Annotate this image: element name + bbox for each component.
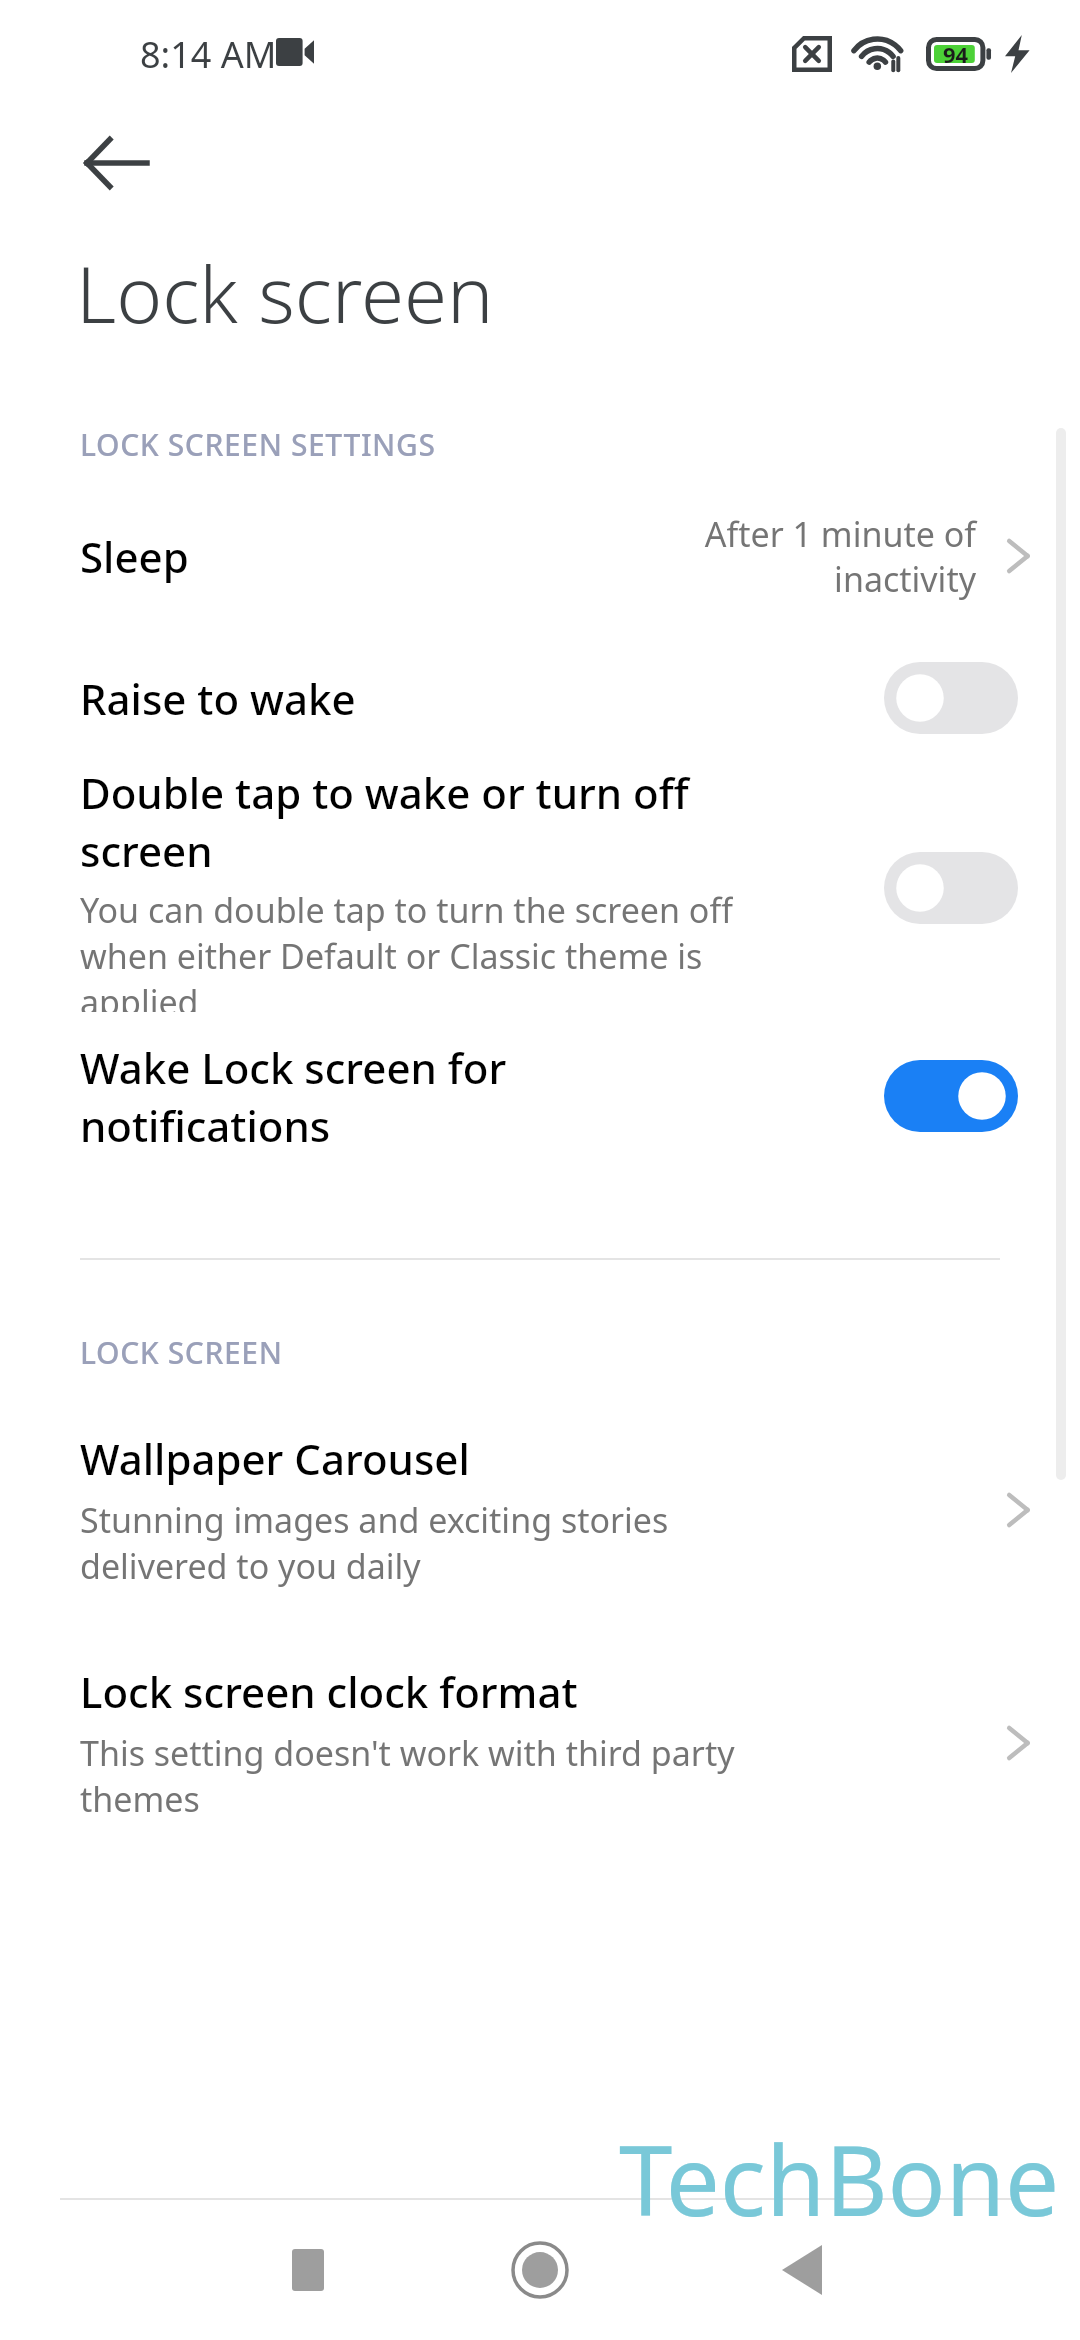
staticText: Stunning images and exciting stories del… <box>80 1497 669 1589</box>
staticText: 8:14 AM <box>140 30 277 79</box>
button[interactable]: Home <box>490 2220 590 2320</box>
button[interactable]: Toggle on <box>884 1060 1018 1132</box>
staticText: After 1 minute of inactivity <box>704 511 976 601</box>
staticText: This setting doesn't work with third par… <box>80 1730 735 1822</box>
button[interactable]: Back <box>756 2224 848 2316</box>
staticText: 94 <box>943 39 969 69</box>
button[interactable]: Wake Lock screen for notifications <box>0 1012 1080 1180</box>
button[interactable]: Recent apps <box>262 2224 354 2316</box>
staticText: LOCK SCREEN SETTINGS <box>80 424 436 465</box>
staticText: Sleep <box>80 528 704 585</box>
staticText: Raise to wake <box>80 670 356 727</box>
staticText: Wake Lock screen for notifications <box>80 1039 507 1154</box>
button[interactable]: Wallpaper Carousel <box>0 1416 1080 1603</box>
staticText: Double tap to wake or turn off screen <box>80 764 689 879</box>
button[interactable]: Toggle off <box>884 662 1018 734</box>
button[interactable]: Double tap to wake or turn off screen <box>0 764 1080 1012</box>
staticText: Lock screen clock format <box>80 1663 578 1720</box>
button[interactable]: Toggle off <box>884 852 1018 924</box>
button[interactable]: Sleep <box>0 480 1080 632</box>
staticText: TechBone <box>619 2113 1060 2244</box>
button[interactable]: Back <box>56 108 176 218</box>
staticText: LOCK SCREEN <box>80 1332 283 1373</box>
staticText: Wallpaper Carousel <box>80 1430 470 1487</box>
staticText: You can double tap to turn the screen of… <box>80 887 733 1012</box>
staticText: Lock screen <box>76 240 494 346</box>
button[interactable]: Raise to wake <box>0 632 1080 764</box>
button[interactable]: Lock screen clock format <box>0 1649 1080 1836</box>
